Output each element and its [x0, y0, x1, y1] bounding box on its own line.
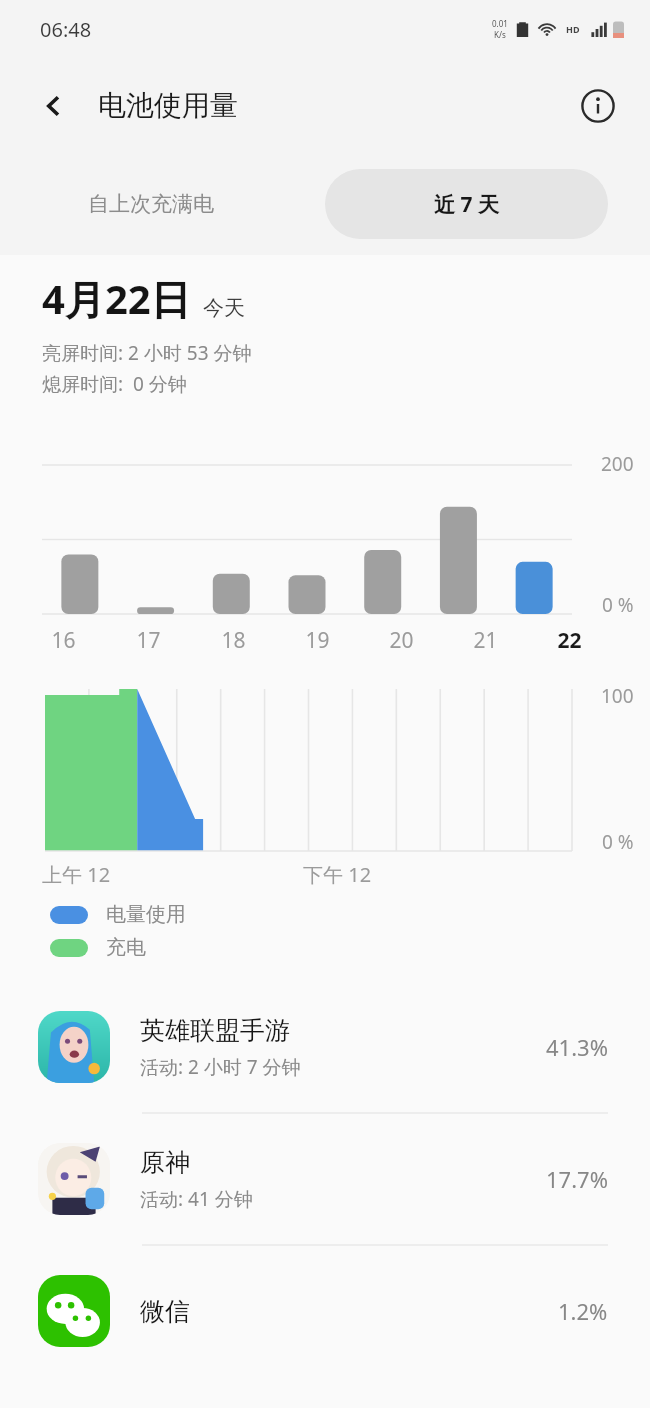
staticText: 电池使用量	[98, 88, 238, 123]
button[interactable]: 自上次充满电	[70, 179, 232, 229]
staticText: 充电	[106, 935, 146, 960]
staticText: 今天	[203, 295, 245, 321]
staticText: 熄屏时间: 0 分钟	[42, 371, 187, 397]
staticText: 电量使用	[106, 902, 186, 927]
staticText: 22	[557, 626, 582, 655]
staticText: HD	[566, 23, 580, 35]
button[interactable]: Back	[30, 82, 78, 130]
staticText: 17	[136, 626, 161, 655]
staticText: 上午 12	[42, 861, 111, 888]
staticText: 自上次充满电	[88, 191, 214, 217]
staticText: 微信	[140, 1296, 190, 1327]
staticText: 活动: 41 分钟	[140, 1186, 253, 1212]
button[interactable]: 原神	[0, 1114, 650, 1244]
button[interactable]: 微信	[0, 1246, 650, 1376]
staticText: 1.2%	[558, 1296, 608, 1326]
staticText: 18	[221, 626, 246, 655]
staticText: 06:48	[40, 16, 92, 43]
staticText: 0 %	[602, 592, 634, 618]
staticText: 4月22日	[42, 271, 191, 326]
button[interactable]: 近 7 天	[325, 169, 608, 239]
staticText: 100	[601, 683, 634, 709]
button[interactable]: 英雄联盟手游	[0, 982, 650, 1112]
staticText: 0 %	[602, 829, 634, 855]
staticText: 英雄联盟手游	[140, 1015, 290, 1046]
staticText: 200	[601, 451, 634, 477]
staticText: 16	[51, 626, 76, 655]
staticText: 原神	[140, 1147, 190, 1178]
staticText: 41.3%	[546, 1032, 608, 1062]
staticText: 活动: 2 小时 7 分钟	[140, 1054, 301, 1080]
staticText: 0.01	[492, 18, 508, 29]
button[interactable]: Information	[574, 82, 622, 130]
staticText: 近 7 天	[434, 190, 499, 219]
staticText: K/s	[494, 29, 506, 40]
staticText: 21	[473, 626, 498, 655]
staticText: 20	[389, 626, 414, 655]
staticText: 17.7%	[546, 1164, 608, 1194]
staticText: 亮屏时间: 2 小时 53 分钟	[42, 340, 252, 366]
staticText: 19	[305, 626, 330, 655]
staticText: 下午 12	[303, 861, 372, 888]
